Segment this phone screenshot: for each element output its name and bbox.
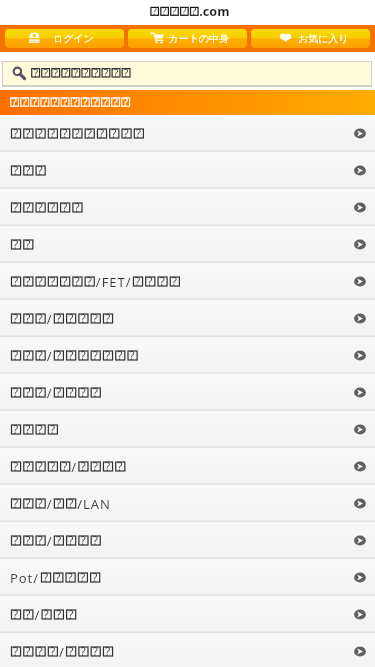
button[interactable]	[0, 633, 375, 667]
button[interactable]	[2, 61, 372, 87]
button[interactable]	[251, 29, 370, 48]
button[interactable]	[0, 152, 375, 189]
button[interactable]	[0, 411, 375, 448]
button[interactable]	[0, 522, 375, 559]
button[interactable]	[0, 263, 375, 300]
button[interactable]	[0, 559, 375, 596]
button[interactable]	[0, 374, 375, 411]
button[interactable]	[0, 226, 375, 263]
button[interactable]	[0, 596, 375, 633]
button[interactable]	[0, 448, 375, 485]
button[interactable]	[0, 189, 375, 226]
button[interactable]	[0, 300, 375, 337]
button[interactable]	[0, 337, 375, 374]
button[interactable]	[0, 485, 375, 522]
button[interactable]	[5, 29, 124, 48]
button[interactable]	[0, 115, 375, 152]
button[interactable]	[128, 29, 247, 48]
